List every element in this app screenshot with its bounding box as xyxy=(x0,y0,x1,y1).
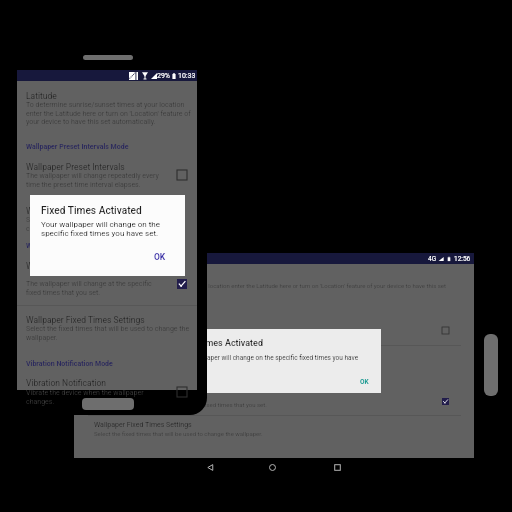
staticText: Select the fixed times that will be used… xyxy=(94,430,263,437)
staticText: 29% xyxy=(157,72,170,80)
staticText: Wallpaper Preset Intervals Mode xyxy=(26,143,129,151)
staticText: 10:33 xyxy=(178,72,196,80)
button[interactable]: Recents xyxy=(330,460,344,474)
staticText: Select the fixed times that will be used… xyxy=(26,325,191,341)
button[interactable]: Home xyxy=(265,460,279,474)
staticText: The wallpaper will change at the specifi… xyxy=(94,401,267,408)
staticText: Your wallpaper will change on the specif… xyxy=(41,220,166,238)
staticText: 4G xyxy=(428,255,437,263)
staticText: Wallpaper Preset Intervals xyxy=(26,162,125,172)
staticText: Vibrate the device when the wallpaper ch… xyxy=(26,389,160,405)
staticText: To determine sunrise/sunset times at you… xyxy=(26,101,191,125)
staticText: Fixed Times Activated xyxy=(41,205,142,217)
button[interactable]: Back xyxy=(203,460,217,474)
button[interactable]: OK xyxy=(355,373,374,391)
staticText: Vibration Notification Mode xyxy=(26,360,113,368)
staticText: OK xyxy=(154,252,166,262)
staticText: 12:56 xyxy=(454,255,471,263)
staticText: Wallpaper Fixed Times xyxy=(26,261,112,271)
staticText: Wallpaper Fixed Times Mode xyxy=(26,242,117,250)
staticText: OK xyxy=(360,378,369,386)
staticText: Your wallpaper will change on the specif… xyxy=(177,354,359,362)
staticText: To determine sunrise/sunset times at you… xyxy=(94,282,446,289)
button[interactable]: OK xyxy=(149,247,171,267)
staticText: Wallpaper Preset Times Settings xyxy=(26,206,149,216)
staticText: Wallpaper Fixed Times Settings xyxy=(94,421,192,429)
staticText: Wallpaper Fixed Times Settings xyxy=(26,315,145,325)
staticText: Fixed Times Activated xyxy=(174,338,264,349)
staticText: The wallpaper will change repeatedly eve… xyxy=(26,172,168,188)
staticText: Select the preset time intervals that wi… xyxy=(26,216,191,232)
staticText: The wallpaper will change at the specifi… xyxy=(26,280,160,296)
staticText: Vibration Notification xyxy=(26,378,107,388)
staticText: Latitude xyxy=(26,91,57,101)
